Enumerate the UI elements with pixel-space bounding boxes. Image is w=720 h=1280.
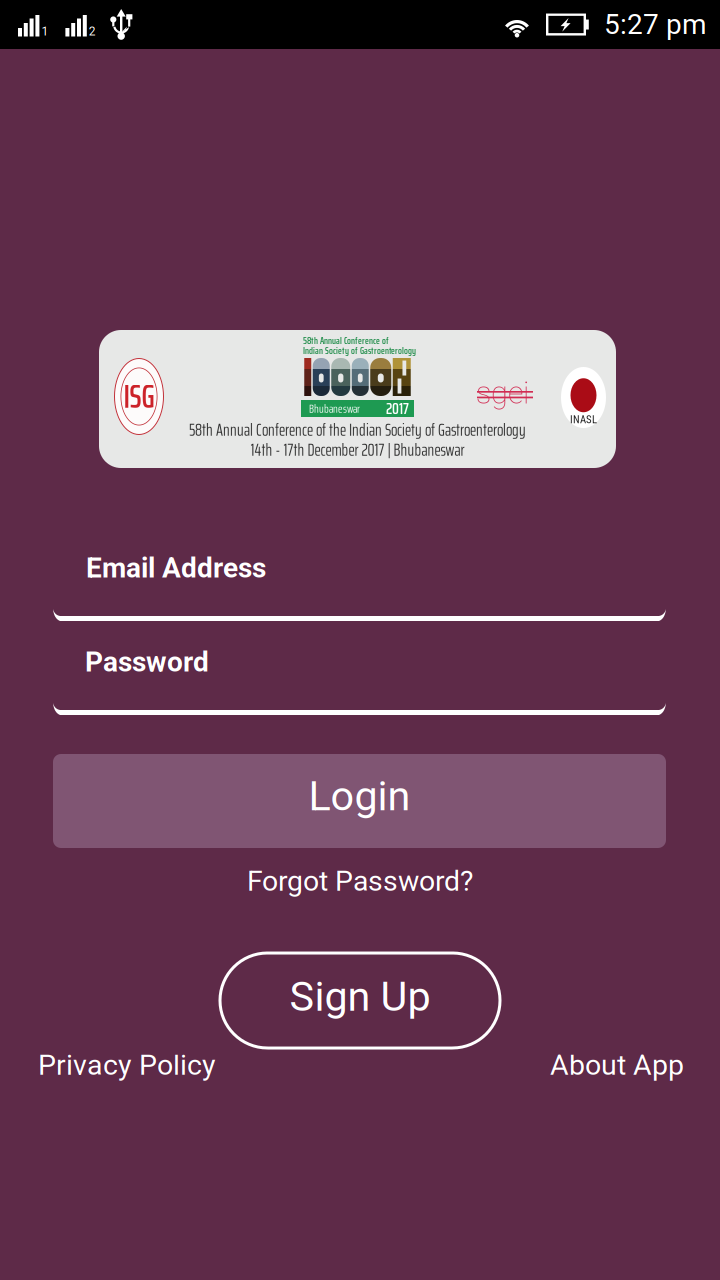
staticText: 58th Annual Conference of: [303, 333, 389, 348]
staticText: Indian Society of Gastroenterology: [303, 343, 416, 358]
staticText: 58th Annual Conference of the Indian Soc…: [189, 417, 526, 443]
button[interactable]: Sign Up: [220, 953, 500, 1048]
staticText: 2: [89, 24, 96, 38]
staticText: Forgot Password?: [247, 864, 473, 898]
staticText: Password: [85, 646, 209, 678]
staticText: ISG: [123, 371, 154, 422]
staticText: Bhubaneswar: [309, 399, 360, 418]
staticText: sgei: [476, 375, 529, 411]
button[interactable]: Login: [53, 754, 666, 848]
staticText: About App: [550, 1048, 684, 1082]
staticText: 14th - 17th December 2017 | Bhubaneswar: [250, 437, 464, 463]
staticText: Email Address: [86, 552, 266, 584]
button[interactable]: Forgot Password?: [210, 857, 510, 905]
staticText: 5:27 pm: [604, 8, 707, 41]
staticText: INASL: [570, 413, 597, 426]
staticText: 1: [41, 24, 48, 38]
staticText: Sign Up: [289, 972, 430, 1021]
staticText: Login: [308, 772, 410, 820]
button[interactable]: About App: [484, 1041, 684, 1089]
staticText: 2017: [386, 396, 409, 421]
staticText: Privacy Policy: [38, 1048, 216, 1082]
button[interactable]: Privacy Policy: [38, 1041, 238, 1089]
